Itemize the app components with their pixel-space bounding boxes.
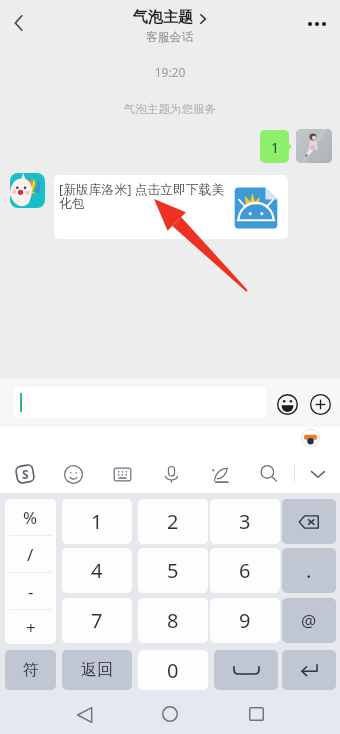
staticText: S (22, 466, 29, 482)
button[interactable]: Recent apps (236, 694, 276, 734)
button[interactable]: More options (300, 7, 334, 41)
button[interactable]: Search (255, 460, 281, 486)
button[interactable]: Key (282, 650, 336, 690)
button[interactable]: 3 (210, 499, 280, 544)
button[interactable]: Emoji (60, 461, 86, 487)
button[interactable]: @ (282, 598, 336, 643)
button[interactable]: 7 (62, 598, 132, 643)
button[interactable]: Emoji (274, 391, 300, 417)
button[interactable]: 4 (62, 548, 132, 593)
staticText: 19:20 (0, 64, 340, 80)
button[interactable]: 0 (138, 650, 208, 690)
staticText: 气泡主题为您服务 (0, 102, 340, 117)
staticText: 客服会话 (146, 30, 194, 45)
staticText: 6 (239, 557, 251, 584)
button[interactable] (13, 387, 266, 418)
button[interactable]: Contact avatar (10, 173, 45, 208)
button[interactable]: 9 (210, 598, 280, 643)
button[interactable]: 1 (62, 499, 132, 544)
staticText: 4 (91, 557, 103, 584)
staticText: 2 (167, 508, 179, 535)
staticText: . (306, 557, 312, 584)
button[interactable]: 符 (5, 650, 56, 690)
button[interactable]: . (282, 548, 336, 593)
button[interactable]: 2 (138, 499, 208, 544)
staticText: [新版库洛米] 点击立即下载美化包 (59, 180, 227, 212)
staticText: @ (301, 609, 317, 632)
staticText: / (27, 543, 34, 566)
staticText: 0 (167, 657, 179, 684)
button[interactable]: Back (64, 695, 104, 734)
staticText: 返回 (81, 660, 113, 680)
button[interactable]: Key (214, 650, 278, 690)
button[interactable]: 1 (260, 130, 292, 163)
staticText: 气泡主题 (133, 8, 193, 27)
staticText: 符 (23, 660, 39, 680)
staticText: 5 (167, 557, 179, 584)
button[interactable]: 返回 (62, 650, 132, 690)
staticText: 3 (239, 508, 251, 535)
button[interactable]: 6 (210, 548, 280, 593)
staticText: 1 (271, 138, 280, 157)
button[interactable]: Key (282, 499, 336, 544)
button[interactable]: Voice input (158, 461, 184, 487)
staticText: 1 (91, 508, 103, 535)
button[interactable]: My avatar (296, 129, 332, 163)
staticText: 8 (167, 607, 179, 634)
button[interactable]: Add attachment (307, 391, 333, 417)
button[interactable]: Input method (12, 461, 38, 487)
button[interactable]: Handwriting (207, 461, 233, 487)
button[interactable]: Hide keyboard (305, 461, 331, 487)
staticText: 7 (91, 607, 103, 634)
button[interactable]: Back (2, 6, 36, 40)
staticText: + (26, 616, 36, 639)
button[interactable]: 8 (138, 598, 208, 643)
button[interactable]: Keyboard (109, 461, 135, 487)
button[interactable]: 5 (138, 548, 208, 593)
button[interactable]: [新版库洛米] 点击立即下载美化包 (54, 175, 288, 239)
button[interactable]: Home (150, 694, 190, 734)
staticText: - (28, 580, 34, 603)
button[interactable]: 气泡主题 (0, 8, 340, 45)
button[interactable]: % (5, 499, 56, 644)
staticText: 9 (239, 607, 251, 634)
staticText: % (23, 506, 38, 529)
